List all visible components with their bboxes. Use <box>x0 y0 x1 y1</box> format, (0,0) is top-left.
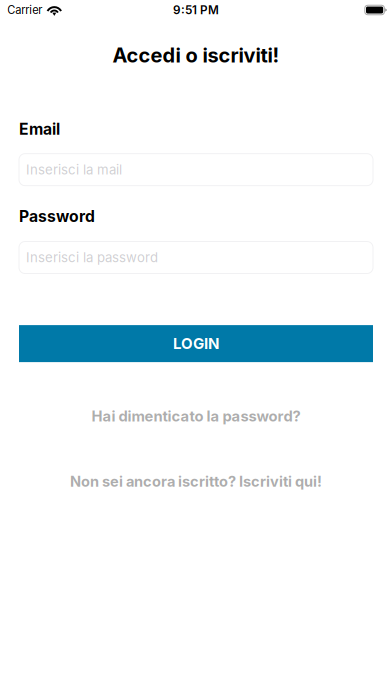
staticText: 9:51 PM <box>173 3 219 17</box>
staticText: Hai dimenticato la password? <box>91 407 300 425</box>
button[interactable]: Inserisci la password <box>19 241 373 273</box>
staticText: Non sei ancora iscritto? Iscriviti qui! <box>70 473 322 490</box>
staticText: Inserisci la mail <box>26 162 122 178</box>
staticText: Carrier <box>7 3 42 17</box>
staticText: Email <box>19 119 60 138</box>
staticText: Password <box>19 207 95 226</box>
staticText: LOGIN <box>173 334 219 353</box>
staticText: Accedi o iscriviti! <box>112 43 279 67</box>
button[interactable]: Inserisci la mail <box>19 154 373 186</box>
staticText: Inserisci la password <box>26 249 158 265</box>
button[interactable]: Non sei ancora iscritto? Iscriviti qui! <box>56 466 336 497</box>
button[interactable]: Hai dimenticato la password? <box>77 400 314 432</box>
button[interactable]: LOGIN <box>19 325 373 362</box>
